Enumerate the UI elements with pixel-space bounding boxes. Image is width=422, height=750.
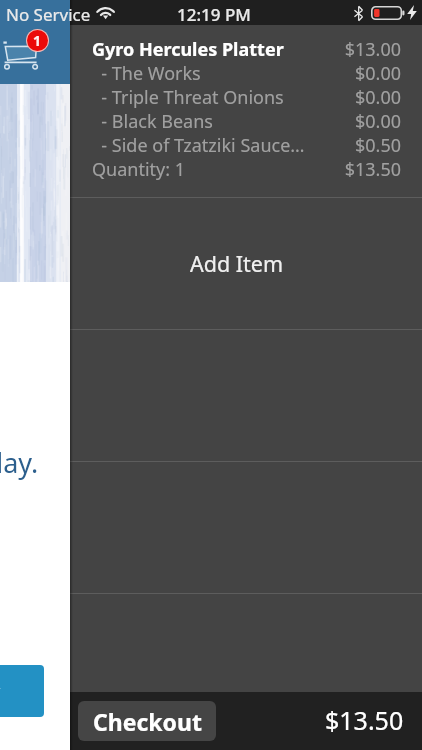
staticText: $13.50	[325, 703, 404, 737]
other: Bluetooth	[354, 6, 363, 21]
button[interactable]: Order Now	[0, 665, 44, 717]
staticText: $13.50	[344, 157, 401, 181]
staticText: $0.00	[354, 61, 401, 85]
staticText: $13.00	[344, 37, 401, 61]
staticText: - Black Beans	[92, 109, 354, 133]
staticText: $0.00	[354, 109, 401, 133]
staticText: - Triple Threat Onions	[92, 85, 354, 109]
staticText: 12:19 PM	[177, 3, 251, 26]
other: Wi-Fi	[97, 7, 116, 21]
button[interactable]: Gyro Hercules Platter	[70, 25, 422, 197]
staticText: Quantity: 1	[92, 157, 344, 181]
button[interactable]: Shopping cart	[0, 32, 52, 74]
staticText: Order with no delay.	[0, 444, 39, 481]
staticText: No Service	[6, 3, 91, 26]
staticText: $0.00	[354, 85, 401, 109]
staticText: - Side of Tzatziki Sauce…	[92, 133, 354, 157]
button[interactable]: Checkout	[78, 701, 216, 741]
staticText: 1	[33, 31, 42, 50]
button[interactable]: Add Item	[70, 198, 422, 329]
staticText: - The Works	[92, 61, 354, 85]
staticText: $0.50	[354, 133, 401, 157]
staticText: Add Item	[190, 249, 284, 278]
staticText: Gyro Hercules Platter	[92, 37, 344, 61]
other: Battery low, charging	[371, 6, 405, 20]
staticText: Checkout	[93, 706, 202, 737]
